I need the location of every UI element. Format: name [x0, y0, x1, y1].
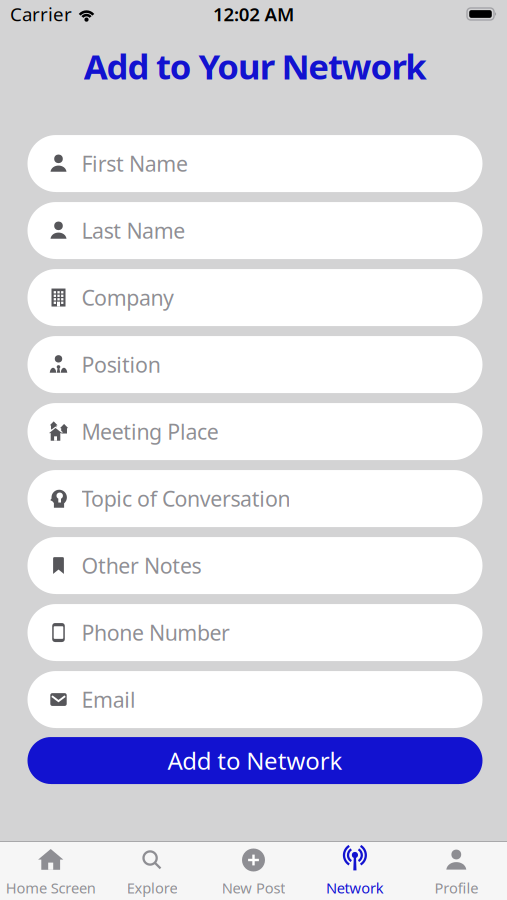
button[interactable]: Profile [406, 847, 507, 897]
button[interactable]: Company [27, 269, 482, 326]
staticText: Network [326, 878, 384, 897]
button[interactable]: Position [27, 336, 482, 393]
staticText: Profile [434, 878, 478, 897]
staticText: Phone Number [81, 618, 230, 647]
button[interactable]: Topic of Conversation [27, 470, 482, 527]
staticText: New Post [222, 878, 285, 897]
button[interactable]: Other Notes [27, 537, 482, 594]
button[interactable]: Add to Network [27, 737, 482, 784]
staticText: Meeting Place [81, 417, 219, 446]
staticText: Home Screen [6, 878, 96, 897]
staticText: Email [81, 685, 136, 714]
staticText: Add to Your Network [84, 43, 426, 89]
button[interactable]: Home Screen [0, 847, 101, 897]
staticText: Company [81, 283, 174, 312]
button[interactable]: Network [304, 847, 406, 897]
button[interactable]: Meeting Place [27, 403, 482, 460]
staticText: Carrier [10, 2, 72, 26]
button[interactable]: First Name [27, 135, 482, 192]
staticText: Add to Network [167, 745, 342, 776]
button[interactable]: Email [27, 671, 482, 728]
staticText: Explore [127, 878, 177, 897]
staticText: Position [81, 350, 161, 379]
staticText: 12:02 AM [213, 2, 294, 26]
button[interactable]: Phone Number [27, 604, 482, 661]
staticText: Other Notes [81, 551, 201, 580]
staticText: Last Name [81, 216, 185, 245]
staticText: First Name [81, 149, 188, 178]
button[interactable]: Explore [101, 847, 203, 897]
button[interactable]: Last Name [27, 202, 482, 259]
staticText: Topic of Conversation [81, 484, 290, 513]
button[interactable]: New Post [203, 847, 304, 897]
